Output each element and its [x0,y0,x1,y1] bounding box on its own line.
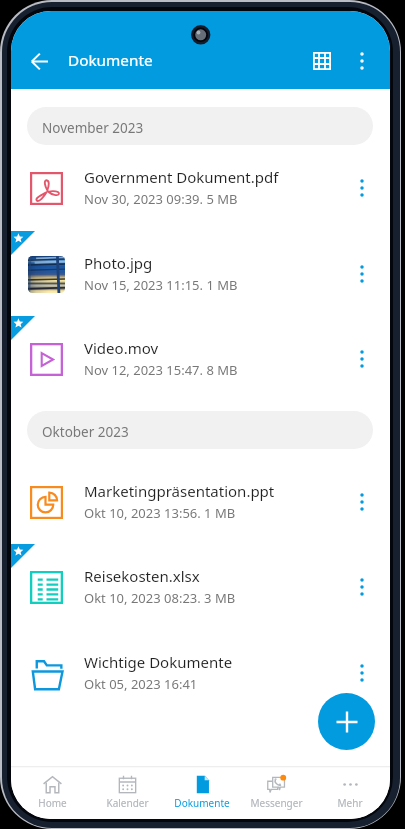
staticText: Okt 05, 2023 16:41 [84,675,198,693]
staticText: Okt 10, 2023 08:23. 3 MB [84,589,236,607]
button[interactable]: Government Dokument.pdf [11,145,390,231]
button[interactable]: Optionen [345,342,379,376]
button[interactable]: Optionen [345,656,379,690]
staticText: Messenger [250,796,303,810]
staticText: Dokumente [174,796,230,810]
staticText: Mehr [337,796,363,810]
button[interactable]: Photo.jpg [11,231,390,317]
staticText: Nov 12, 2023 15:47. 8 MB [84,361,238,379]
button[interactable]: Optionen [345,570,379,604]
button[interactable]: Weitere Optionen [340,39,384,83]
staticText: November 2023 [42,119,144,137]
staticText: Video.mov [84,338,159,358]
staticText: Reisekosten.xlsx [84,566,200,586]
staticText: Oktober 2023 [42,423,129,441]
button[interactable]: Neu erstellen [318,693,375,750]
staticText: Wichtige Dokumente [84,652,233,672]
staticText: Dokumente [68,50,153,71]
button[interactable]: Oktober 2023 [27,411,373,449]
button[interactable]: Marketingpräsentation.ppt [11,459,390,545]
staticText: Marketingpräsentation.ppt [84,481,275,501]
staticText: Government Dokument.pdf [84,167,279,187]
button[interactable]: Mehr [313,766,387,819]
button[interactable]: Reisekosten.xlsx [11,544,390,630]
button[interactable]: Video.mov [11,316,390,402]
staticText: Nov 30, 2023 09:39. 5 MB [84,190,238,208]
button[interactable]: Home [15,766,90,819]
button[interactable]: Optionen [345,171,379,205]
button[interactable]: Wichtige Dokumente [11,630,390,716]
staticText: Kalender [106,796,149,810]
button[interactable]: Zurück [17,39,61,83]
button[interactable]: Dokumente [165,766,239,819]
staticText: Okt 10, 2023 13:56. 1 MB [84,504,236,522]
button[interactable]: November 2023 [27,107,373,145]
staticText: Photo.jpg [84,253,153,273]
staticText: Home [38,796,67,810]
staticText: Nov 15, 2023 11:15. 1 MB [84,276,238,294]
button[interactable]: Kalender [90,766,165,819]
button[interactable]: Messenger [239,766,313,819]
button[interactable]: Optionen [345,257,379,291]
button[interactable]: Rasteransicht [300,39,344,83]
button[interactable]: Optionen [345,485,379,519]
